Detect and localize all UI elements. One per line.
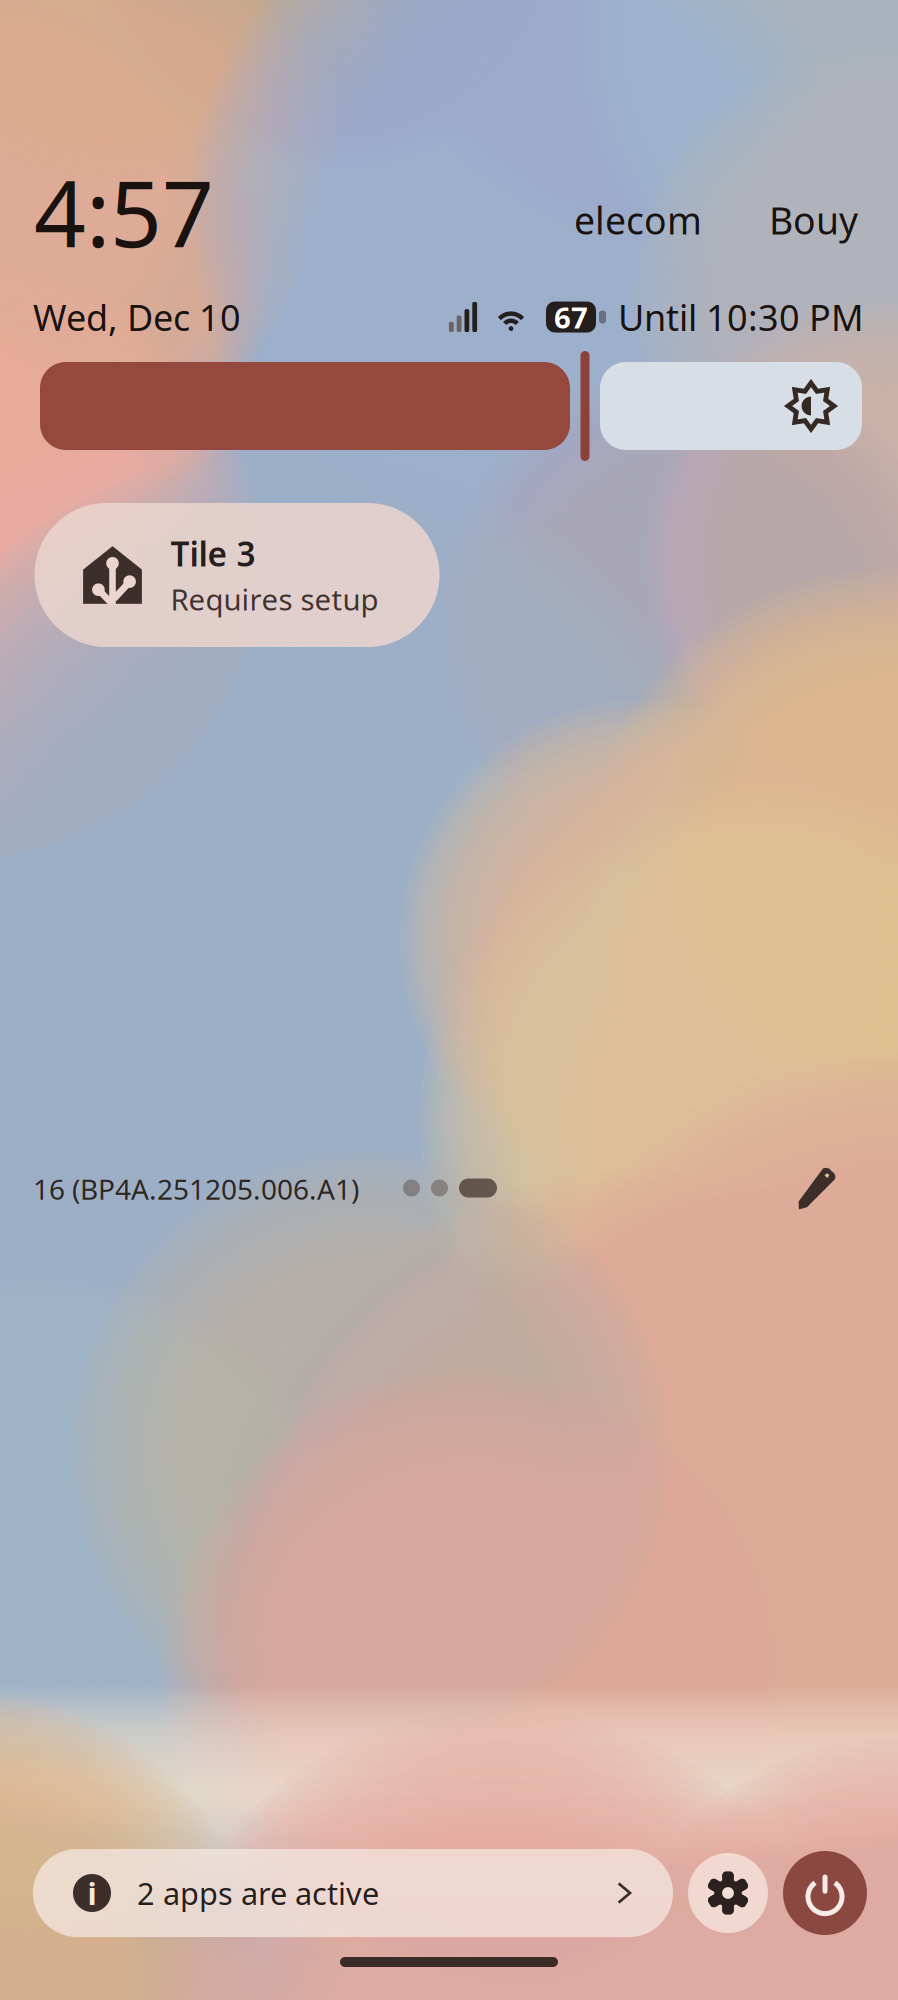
staticText: elecom: [574, 195, 702, 245]
button[interactable]: Tile 3: [34, 503, 439, 647]
staticText: 2 apps are active: [137, 1873, 379, 1913]
button[interactable]: i: [33, 1849, 673, 1937]
button[interactable]: Brightness: [600, 362, 862, 450]
staticText: 16 (BP4A.251205.006.A1): [33, 1170, 359, 1208]
staticText: Wed, Dec 10: [33, 293, 241, 341]
button[interactable]: Volume: [40, 362, 570, 450]
staticText: Until 10:30 PM: [618, 293, 864, 341]
staticText: Bouy: [769, 195, 858, 245]
staticText: Requires setup: [170, 580, 378, 619]
staticText: 67: [554, 297, 588, 336]
button[interactable]: Edit: [787, 1157, 849, 1219]
button[interactable]: Settings: [688, 1853, 768, 1933]
staticText: i: [87, 1873, 96, 1913]
button[interactable]: Power: [783, 1851, 867, 1935]
staticText: Tile 3: [170, 531, 255, 576]
staticText: 4:57: [34, 152, 214, 272]
